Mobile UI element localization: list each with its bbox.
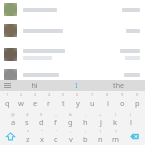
button[interactable]: Shift (0, 128, 21, 145)
button[interactable]: ' (49, 128, 63, 145)
button[interactable]: " (35, 128, 49, 145)
button[interactable]: Keyboard menu (0, 80, 14, 91)
staticText: g (68, 117, 73, 127)
button[interactable]: - (78, 111, 93, 128)
button[interactable]: ? (108, 128, 123, 145)
button[interactable]: + (93, 111, 108, 128)
staticText: ; (85, 129, 87, 134)
button[interactable]: @ (6, 111, 20, 128)
staticText: m (112, 134, 120, 144)
staticText: hi (31, 81, 38, 91)
button[interactable] (0, 19, 145, 42)
staticText: l (130, 117, 132, 127)
button[interactable]: 3 (28, 91, 42, 111)
button[interactable]: 2 (14, 91, 28, 111)
button[interactable]: 8 (100, 91, 115, 111)
staticText: s (25, 117, 29, 127)
button[interactable] (0, 42, 145, 66)
staticText: r (47, 98, 51, 108)
button[interactable]: 1 (0, 91, 14, 111)
staticText: y (76, 98, 80, 108)
button[interactable]: Backspace (123, 128, 145, 145)
button[interactable] (0, 66, 145, 84)
staticText: x (40, 134, 44, 144)
button[interactable]: 9 (115, 91, 130, 111)
staticText: w (18, 98, 24, 108)
staticText: # (26, 112, 29, 117)
staticText: 0 (136, 92, 139, 97)
staticText: * (27, 129, 30, 134)
staticText: 4 (48, 92, 51, 97)
staticText: u (90, 98, 95, 108)
button[interactable]: the (97, 80, 139, 91)
button[interactable]: * (21, 128, 35, 145)
button[interactable]: 5 (56, 91, 70, 111)
button[interactable]: 6 (70, 91, 85, 111)
staticText: ! (100, 129, 102, 134)
staticText: ? (115, 129, 117, 134)
staticText: the (113, 81, 124, 91)
staticText: 5 (62, 92, 65, 97)
staticText: f (54, 117, 57, 127)
staticText: k (113, 117, 118, 127)
button[interactable]: 0 (130, 91, 145, 111)
button[interactable]: : (63, 128, 78, 145)
button[interactable]: _ (48, 111, 63, 128)
staticText: p (135, 98, 140, 108)
staticText: 8 (106, 92, 109, 97)
staticText: & (69, 112, 72, 117)
staticText: $ (40, 112, 43, 117)
staticText: q (5, 98, 10, 108)
button[interactable]: 7 (85, 91, 100, 111)
staticText: 6 (76, 92, 79, 97)
button[interactable]: I (55, 80, 97, 91)
button[interactable]: hi (14, 80, 55, 91)
button[interactable] (0, 0, 145, 19)
staticText: a (11, 117, 16, 127)
staticText: " (41, 129, 43, 134)
button[interactable]: $ (34, 111, 48, 128)
staticText: o (120, 98, 125, 108)
staticText: z (26, 134, 30, 144)
staticText: v (69, 134, 73, 144)
button[interactable]: ) (123, 111, 138, 128)
staticText: I (75, 81, 78, 91)
button[interactable]: # (20, 111, 34, 128)
staticText: 7 (91, 92, 94, 97)
button[interactable]: 4 (42, 91, 56, 111)
staticText: ( (115, 112, 117, 117)
staticText: c (54, 134, 58, 144)
staticText: ' (56, 129, 57, 134)
staticText: n (98, 134, 103, 144)
staticText: _ (55, 112, 57, 117)
staticText: - (85, 112, 87, 117)
staticText: j (100, 117, 102, 127)
staticText: i (107, 98, 109, 108)
staticText: t (62, 98, 65, 108)
staticText: d (39, 117, 44, 127)
button[interactable]: ! (93, 128, 108, 145)
staticText: 9 (121, 92, 124, 97)
staticText: 2 (20, 92, 23, 97)
staticText: h (83, 117, 88, 127)
staticText: + (99, 112, 102, 117)
staticText: ) (130, 112, 132, 117)
staticText: e (33, 98, 38, 108)
staticText: : (70, 129, 72, 134)
staticText: b (83, 134, 88, 144)
staticText: 3 (34, 92, 37, 97)
button[interactable]: ( (108, 111, 123, 128)
button[interactable]: & (63, 111, 78, 128)
button[interactable]: ; (78, 128, 93, 145)
staticText: 1 (6, 92, 9, 97)
staticText: @ (11, 112, 15, 117)
